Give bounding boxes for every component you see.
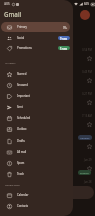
button[interactable]: Jun 28	[0, 176, 95, 198]
button[interactable]: 7:13 AM	[0, 110, 95, 132]
staticText: Scheduled	[17, 116, 31, 120]
button[interactable]: All mail	[1, 147, 70, 157]
button[interactable]: Social	[1, 33, 70, 43]
staticText: Important	[17, 94, 30, 98]
staticText: 3:45 PM	[82, 70, 92, 74]
button[interactable]: Trash	[1, 169, 70, 179]
staticText: Calendar	[17, 193, 29, 197]
staticText: Starred	[17, 72, 27, 76]
staticText: 99+	[63, 26, 68, 29]
button[interactable]: Starred	[1, 69, 70, 79]
staticText: 7:13 AM	[82, 114, 92, 118]
staticText: Jun 28	[84, 180, 92, 184]
button[interactable]: Account	[80, 10, 90, 20]
button[interactable]: Calendar	[1, 190, 70, 200]
staticText: 4:05	[4, 2, 10, 6]
button[interactable]: Contacts	[1, 201, 70, 211]
button[interactable]: Jun 29	[0, 154, 95, 176]
staticText: Updates	[80, 136, 90, 139]
staticText: 84%	[84, 2, 90, 6]
staticText: Sent	[17, 105, 23, 109]
button[interactable]: 3:21 PM	[0, 88, 95, 110]
staticText: Spam	[17, 161, 25, 165]
staticText: Drafts	[17, 139, 25, 143]
staticText: Gmail	[4, 10, 22, 18]
staticText: 9 new	[60, 37, 68, 40]
staticText: All labels	[5, 61, 16, 64]
staticText: 5 new	[60, 47, 68, 50]
staticText: Google apps	[5, 183, 20, 186]
staticText: 3:21 PM	[82, 92, 92, 96]
button[interactable]: Outbox	[1, 124, 70, 134]
staticText: Jun 29	[84, 158, 92, 162]
staticText: Promos	[80, 171, 89, 174]
button[interactable]: Snoozed	[1, 80, 70, 90]
button[interactable]: Scheduled	[1, 113, 70, 123]
staticText: Jun 30	[84, 136, 92, 140]
staticText: 3:54 PM	[82, 48, 92, 52]
button[interactable]: Important	[1, 91, 70, 101]
staticText: Primary	[17, 25, 27, 29]
staticText: Snoozed	[17, 83, 28, 87]
button[interactable]: 3:45 PM	[0, 66, 95, 88]
staticText: Contacts	[17, 204, 29, 208]
staticText: Unread sender	[1, 33, 22, 37]
staticText: Trash	[17, 172, 24, 176]
staticText: All mail	[17, 150, 27, 154]
button[interactable]: Compose	[62, 186, 94, 199]
button[interactable]: Sent	[1, 102, 70, 112]
staticText: Social	[17, 36, 25, 40]
button[interactable]: Promotions	[1, 43, 70, 53]
staticText: Outbox	[17, 127, 27, 131]
staticText: Promotions	[17, 46, 32, 50]
button[interactable]: Primary	[1, 22, 70, 32]
button[interactable]: Jun 30	[0, 132, 95, 154]
button[interactable]: Drafts	[1, 136, 70, 146]
button[interactable]: Spam	[1, 158, 70, 168]
button[interactable]: 3:54 PM	[0, 44, 95, 66]
